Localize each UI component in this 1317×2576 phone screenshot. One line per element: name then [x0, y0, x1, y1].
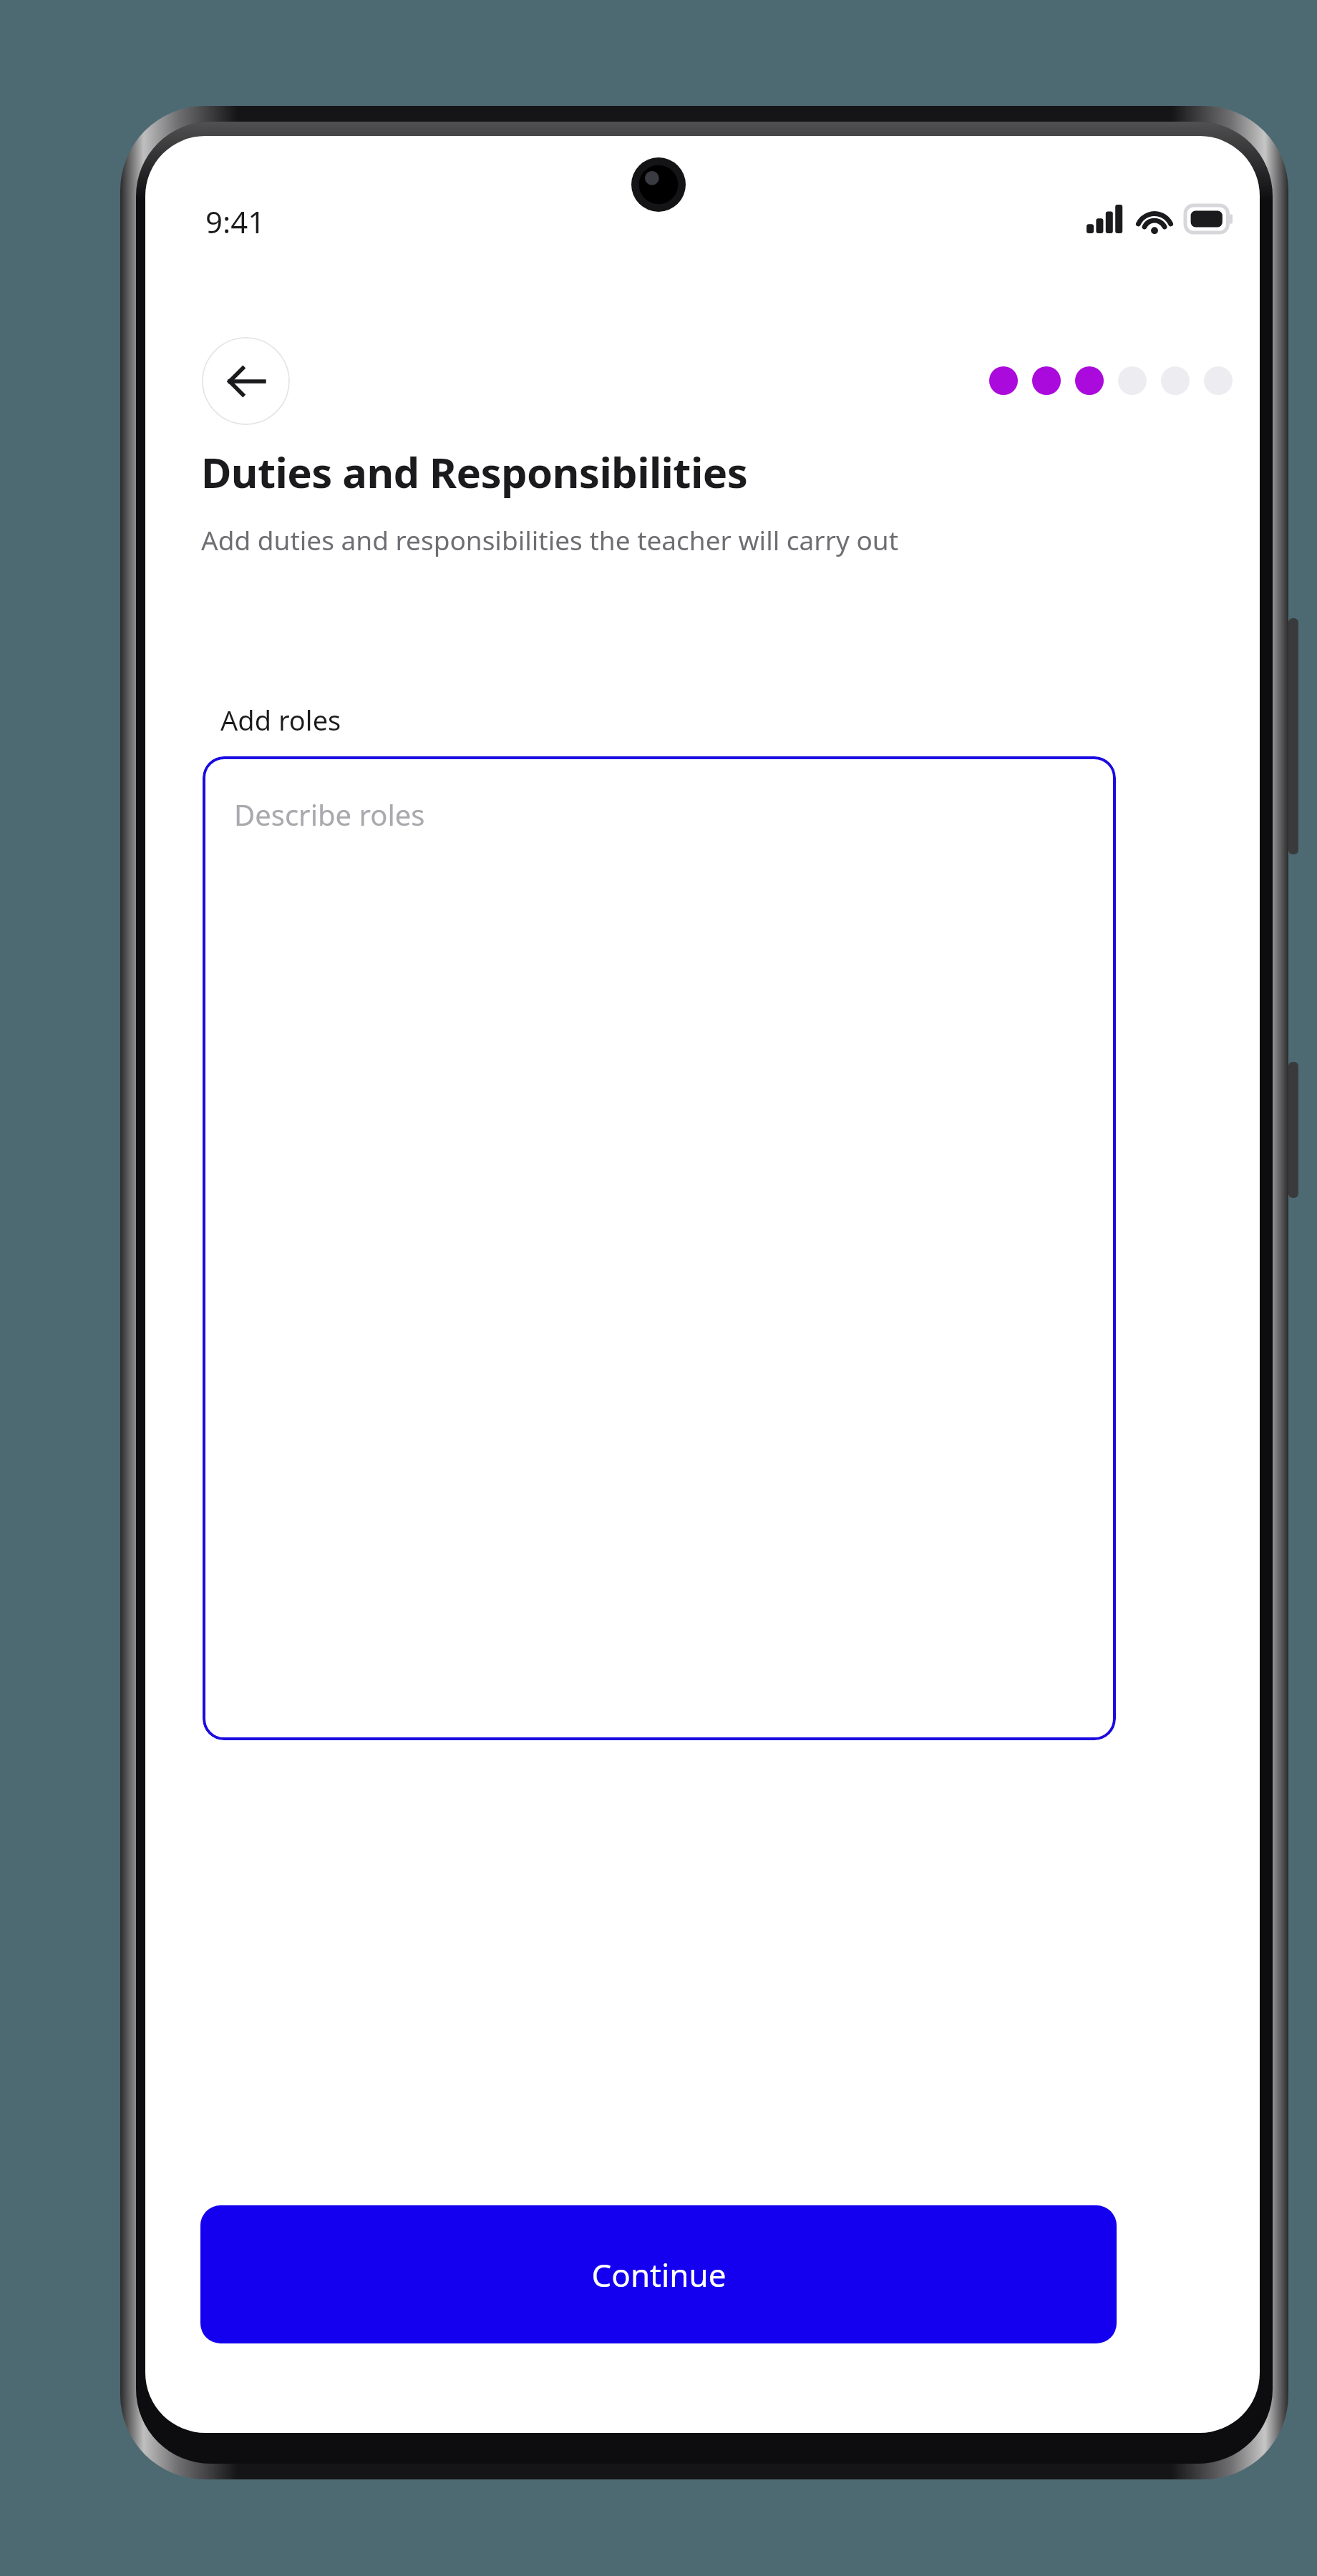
staticText: Describe roles	[234, 795, 425, 834]
button[interactable]: Describe roles	[203, 756, 1116, 1740]
button[interactable]: Continue	[200, 2205, 1117, 2343]
button[interactable]: Back	[202, 337, 290, 425]
staticText: 9:41	[205, 201, 266, 242]
staticText: Continue	[591, 2253, 726, 2296]
staticText: Add duties and responsibilities the teac…	[201, 522, 899, 557]
staticText: Add roles	[220, 701, 341, 738]
staticText: Duties and Responsibilities	[201, 444, 748, 500]
